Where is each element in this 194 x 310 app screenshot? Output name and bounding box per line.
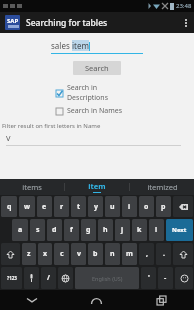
button[interactable]: r (54, 196, 69, 217)
staticText: item (72, 40, 89, 51)
staticText: s (36, 225, 40, 235)
button[interactable]: Backspace (173, 196, 193, 217)
button[interactable]: Emoji (175, 267, 193, 289)
staticText: Filter result on first letters in Name (2, 122, 101, 130)
button[interactable]: - (158, 267, 173, 289)
staticText: items (22, 182, 42, 192)
button[interactable]: p (156, 196, 171, 217)
button[interactable]: Shift (1, 243, 20, 265)
staticText: . (163, 249, 165, 259)
staticText: ?123 (7, 275, 17, 281)
staticText: e (42, 202, 47, 212)
staticText: j (121, 225, 124, 235)
staticText: sales (51, 40, 72, 51)
staticText: m (126, 249, 133, 259)
button[interactable]: ' (141, 267, 156, 289)
button[interactable]: q (1, 196, 17, 217)
button[interactable]: Next (166, 219, 193, 241)
staticText: i (128, 202, 131, 212)
button[interactable]: a (12, 219, 28, 241)
button[interactable]: . (156, 243, 171, 265)
button[interactable]: More options (178, 12, 194, 33)
button[interactable]: x (38, 243, 52, 265)
button[interactable]: item (65, 179, 129, 195)
staticText: g (86, 225, 91, 235)
button[interactable]: i (122, 196, 137, 217)
button[interactable]: d (47, 219, 62, 241)
staticText: c (60, 249, 64, 259)
button[interactable]: , (139, 243, 154, 265)
button[interactable]: English (US) (75, 267, 139, 289)
staticText: v (77, 249, 81, 259)
staticText: z (27, 249, 31, 259)
staticText: x (43, 249, 48, 259)
button[interactable]: m (122, 243, 137, 265)
button[interactable]: Hide keyboard (0, 290, 64, 310)
staticText: V (6, 133, 11, 143)
staticText: , (146, 249, 148, 259)
staticText: w (24, 202, 30, 212)
staticText: l (155, 225, 158, 235)
button[interactable]: t (71, 196, 86, 217)
staticText: q (7, 202, 12, 212)
button[interactable]: Search (73, 61, 121, 75)
button[interactable]: w (19, 196, 35, 217)
staticText: k (137, 225, 142, 235)
button[interactable]: items (0, 179, 64, 195)
button[interactable]: itemized (130, 179, 194, 195)
button[interactable]: n (105, 243, 120, 265)
button[interactable]: j (115, 219, 130, 241)
staticText: o (144, 202, 149, 212)
button[interactable]: c (54, 243, 69, 265)
button[interactable]: Recent apps (129, 290, 194, 310)
staticText: b (93, 249, 98, 259)
button[interactable]: e (37, 196, 52, 217)
button[interactable]: z (22, 243, 36, 265)
staticText: f (70, 225, 73, 235)
staticText: - (164, 273, 167, 283)
button[interactable]: Home (64, 290, 129, 310)
button[interactable]: v (71, 243, 86, 265)
button[interactable]: s (30, 219, 45, 241)
staticText: y (94, 202, 98, 212)
button[interactable]: h (98, 219, 113, 241)
button[interactable]: / (41, 267, 56, 289)
staticText: 23:48 (176, 2, 192, 10)
staticText: itemized (147, 182, 178, 192)
staticText: n (110, 249, 115, 259)
button[interactable]: l (149, 219, 164, 241)
button[interactable]: Shift (173, 243, 193, 265)
staticText: Search in Descriptions (67, 83, 138, 103)
button[interactable]: u (105, 196, 120, 217)
staticText: / (47, 273, 50, 283)
button[interactable]: g (81, 219, 96, 241)
button[interactable]: y (88, 196, 103, 217)
staticText: a (18, 225, 23, 235)
staticText: d (52, 225, 57, 235)
button[interactable]: ?123 (1, 267, 22, 289)
staticText: p (161, 202, 166, 212)
staticText: Search in Names (67, 106, 123, 116)
staticText: t (77, 202, 81, 212)
staticText: SAP (7, 17, 19, 25)
staticText: English (US) (92, 275, 123, 282)
staticText: item (88, 181, 106, 191)
button[interactable]: Search in Names (56, 106, 138, 116)
staticText: Search (85, 63, 109, 73)
button[interactable]: k (132, 219, 147, 241)
staticText: ' (148, 273, 150, 283)
staticText: u (110, 202, 115, 212)
button[interactable]: Voice input (24, 267, 39, 289)
staticText: h (103, 225, 108, 235)
button[interactable]: Search in Descriptions (56, 83, 138, 103)
staticText: r (60, 202, 64, 212)
button[interactable]: Change language (58, 267, 73, 289)
button[interactable]: o (139, 196, 154, 217)
button[interactable]: f (64, 219, 79, 241)
staticText: Searching for tables (26, 17, 108, 29)
button[interactable]: b (88, 243, 103, 265)
staticText: Next (172, 226, 187, 234)
